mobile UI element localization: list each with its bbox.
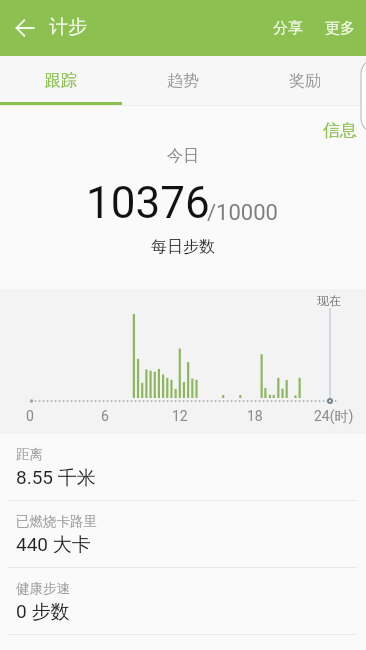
staticText: 0 — [26, 408, 34, 424]
button[interactable]: 分享 — [263, 6, 313, 51]
staticText: 今日 — [167, 146, 199, 166]
button[interactable]: 奖励 — [244, 56, 366, 105]
staticText: 8.55 千米 — [16, 466, 96, 490]
staticText: 跟踪 — [45, 71, 77, 91]
staticText: 10376 — [86, 177, 210, 229]
staticText: 计步 — [49, 15, 87, 39]
staticText: 趋势 — [167, 71, 199, 91]
staticText: 24(时) — [314, 408, 354, 426]
staticText: 18 — [247, 408, 263, 424]
staticText: 分享 — [273, 19, 303, 38]
staticText: 0 步数 — [16, 600, 70, 624]
staticText: 距离 — [16, 446, 43, 463]
staticText: 12 — [172, 408, 188, 424]
staticText: 健康步速 — [16, 580, 70, 597]
button[interactable]: 已燃烧卡路里 — [0, 501, 366, 568]
button[interactable]: 趋势 — [122, 56, 244, 105]
button[interactable]: Back — [3, 6, 47, 50]
staticText: 440 大卡 — [16, 533, 91, 557]
staticText: 已燃烧卡路里 — [16, 513, 97, 530]
button[interactable]: 距离 — [0, 434, 366, 501]
button[interactable]: 健康步速 — [0, 568, 366, 635]
button[interactable]: 跟踪 — [0, 56, 122, 105]
button[interactable]: 更多 — [313, 6, 366, 51]
staticText: 每日步数 — [151, 237, 215, 257]
staticText: 奖励 — [289, 71, 321, 91]
button[interactable]: 信息 — [319, 116, 361, 145]
staticText: 更多 — [325, 19, 355, 38]
staticText: 信息 — [323, 120, 357, 141]
staticText: 现在 — [317, 293, 341, 308]
staticText: 6 — [101, 408, 109, 424]
staticText: /10000 — [207, 200, 278, 226]
